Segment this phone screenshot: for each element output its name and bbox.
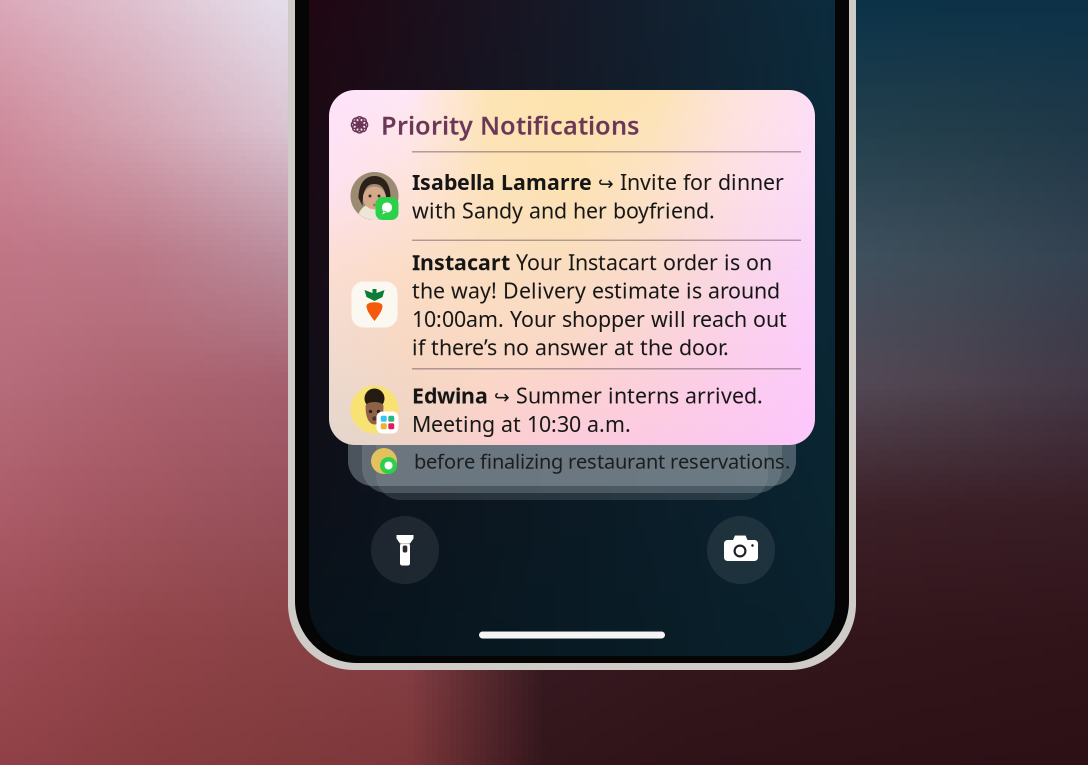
staticText: Instacart Your Instacart order is on the… (412, 248, 787, 361)
staticText: Isabella Lamarre ↪ Invite for dinner wit… (412, 168, 784, 224)
staticText: before finalizing restaurant reservation… (414, 448, 790, 474)
button[interactable]: Camera (707, 516, 775, 584)
button[interactable]: Flashlight (371, 516, 439, 584)
staticText: Edwina ↪ Summer interns arrived. Meeting… (412, 381, 763, 438)
staticText: Priority Notifications (381, 108, 639, 142)
